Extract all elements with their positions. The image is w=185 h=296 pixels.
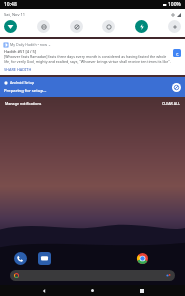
staticText: [Whoever fasts Ramadan] fasts three days…	[4, 54, 171, 64]
button[interactable]: Wi-Fi	[4, 20, 17, 33]
staticText: My Daily Hadith • now ⌄	[10, 42, 51, 47]
staticText: Android Setup	[10, 80, 35, 85]
button[interactable]: Recents	[136, 285, 147, 296]
button[interactable]: Manage notifications	[5, 101, 42, 106]
other: App icon	[4, 43, 8, 47]
button[interactable]: SHARE HADITH	[4, 67, 32, 72]
button[interactable]: Flashlight	[135, 20, 148, 33]
button[interactable]: Back	[38, 285, 49, 296]
button[interactable]: Setup progress	[172, 83, 181, 92]
button[interactable]: Search	[10, 270, 175, 281]
staticText: Preparing for setup...	[4, 88, 47, 94]
button[interactable]: Add tile	[168, 20, 181, 33]
staticText: SHARE HADITH	[4, 67, 32, 72]
other: Android	[4, 81, 8, 85]
staticText: Hadith #51 [4 / 5]	[4, 49, 37, 54]
button[interactable]: App icon	[0, 39, 185, 75]
button[interactable]: Phone	[14, 252, 27, 265]
button[interactable]: Android	[0, 77, 185, 97]
button[interactable]: Messages	[38, 252, 51, 265]
staticText: ح	[176, 51, 179, 56]
staticText: 10:48	[4, 1, 17, 8]
staticText: Manage notifications	[5, 101, 42, 106]
button[interactable]: Home	[87, 285, 98, 296]
button[interactable]: CLEAR ALL	[162, 101, 180, 106]
button[interactable]: Chrome	[136, 252, 149, 265]
button[interactable]: Battery saver	[102, 20, 115, 33]
button[interactable]: Bluetooth	[37, 20, 50, 33]
button[interactable]: Do not disturb	[70, 20, 83, 33]
staticText: CLEAR ALL	[162, 101, 180, 106]
staticText: 100%	[168, 1, 181, 8]
staticText: Sat, Nov 11	[4, 12, 26, 17]
